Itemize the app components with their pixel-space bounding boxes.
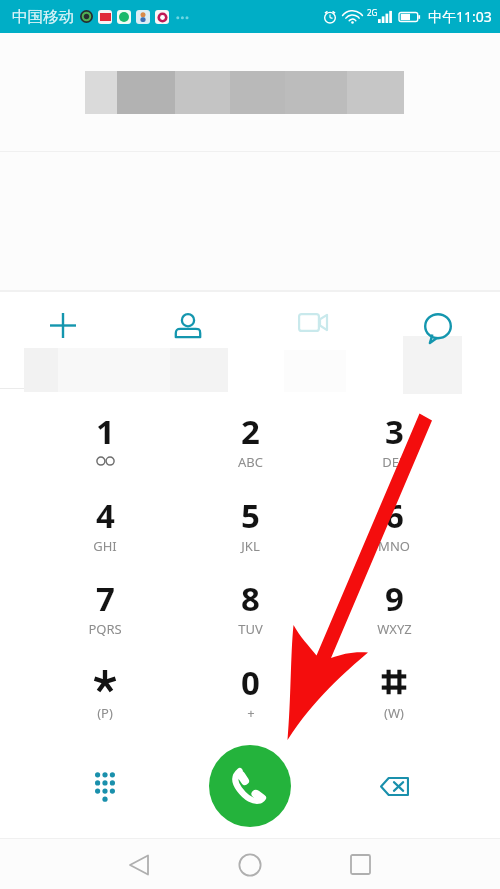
staticText: JKL bbox=[241, 537, 260, 555]
button[interactable]: 0 bbox=[178, 660, 322, 743]
button[interactable]: Dialpad bbox=[65, 746, 145, 826]
staticText: 4 bbox=[96, 493, 115, 537]
button[interactable]: 9 bbox=[322, 576, 466, 659]
button[interactable]: 1 bbox=[33, 409, 177, 492]
staticText: 中午11:03 bbox=[428, 7, 492, 26]
staticText: WXYZ bbox=[377, 620, 412, 638]
staticText: MNO bbox=[378, 537, 410, 555]
button[interactable]: (P) bbox=[33, 660, 177, 743]
button[interactable]: Add contact bbox=[0, 286, 125, 364]
staticText: 9 bbox=[385, 576, 404, 620]
staticText: DEF bbox=[382, 453, 406, 471]
staticText: PQRS bbox=[88, 620, 122, 638]
staticText: 1 bbox=[96, 409, 115, 453]
staticText: (P) bbox=[97, 704, 113, 722]
staticText: ABC bbox=[238, 453, 263, 471]
button[interactable]: Contacts bbox=[125, 286, 250, 364]
button[interactable]: 8 bbox=[178, 576, 322, 659]
staticText: 3 bbox=[385, 409, 404, 453]
staticText: 中国移动 bbox=[12, 7, 74, 27]
staticText: 7 bbox=[96, 576, 115, 620]
button[interactable]: 6 bbox=[322, 493, 466, 576]
button[interactable]: Video call bbox=[250, 286, 375, 364]
staticText: (W) bbox=[384, 704, 404, 722]
button[interactable]: 5 bbox=[178, 493, 322, 576]
button[interactable]: (W) bbox=[322, 660, 466, 743]
button[interactable]: 2 bbox=[178, 409, 322, 492]
staticText: 8 bbox=[241, 576, 260, 620]
staticText: 6 bbox=[385, 493, 404, 537]
button[interactable]: Home bbox=[224, 838, 276, 889]
staticText: 2 bbox=[241, 409, 260, 453]
button[interactable]: Recents bbox=[334, 838, 386, 889]
button[interactable]: 7 bbox=[33, 576, 177, 659]
staticText: TUV bbox=[238, 620, 263, 638]
staticText: + bbox=[247, 704, 255, 722]
button[interactable]: Messages bbox=[375, 286, 500, 364]
button[interactable]: Backspace bbox=[354, 746, 434, 826]
staticText: 0 bbox=[241, 660, 260, 704]
staticText: GHI bbox=[93, 537, 117, 555]
button[interactable]: 3 bbox=[322, 409, 466, 492]
button[interactable]: Call bbox=[209, 745, 291, 827]
button[interactable]: 4 bbox=[33, 493, 177, 576]
staticText: 2G bbox=[367, 7, 378, 18]
staticText: 5 bbox=[241, 493, 260, 537]
button[interactable]: Back bbox=[113, 838, 165, 889]
